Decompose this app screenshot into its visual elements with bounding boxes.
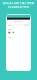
staticText: AVAILABLE NOW: [7, 5, 29, 8]
staticText: My Courses: [14, 20, 23, 22]
staticText: EDUCATION PLATFORM: [2, 1, 34, 5]
